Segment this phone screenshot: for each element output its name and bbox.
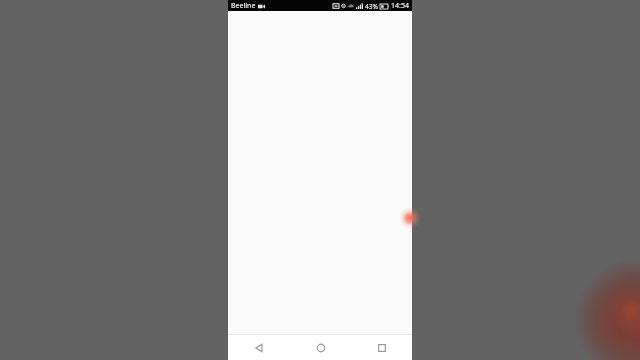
button[interactable]: Back xyxy=(228,335,290,360)
staticText: 14:54 xyxy=(391,1,409,11)
staticText: Beeline xyxy=(231,1,256,11)
button[interactable]: Home xyxy=(290,335,351,360)
staticText: 43% xyxy=(365,2,378,11)
button[interactable]: Recent apps xyxy=(351,335,412,360)
